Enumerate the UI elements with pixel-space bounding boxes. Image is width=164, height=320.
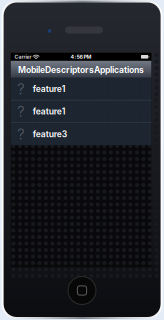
staticText: feature1 xyxy=(33,106,66,117)
staticText: ? xyxy=(17,80,24,98)
staticText: MobileDescriptorsApplications xyxy=(18,65,144,75)
button[interactable]: Home xyxy=(68,276,96,304)
staticText: feature1 xyxy=(33,84,66,94)
button[interactable]: ? xyxy=(11,78,151,100)
staticText: ? xyxy=(17,103,24,120)
staticText: feature3 xyxy=(33,129,68,139)
staticText: Carrier xyxy=(14,54,31,60)
button[interactable]: ? xyxy=(11,123,151,145)
button[interactable]: ? xyxy=(11,100,151,122)
staticText: 4:56 PM xyxy=(70,54,91,60)
staticText: ? xyxy=(17,125,24,143)
